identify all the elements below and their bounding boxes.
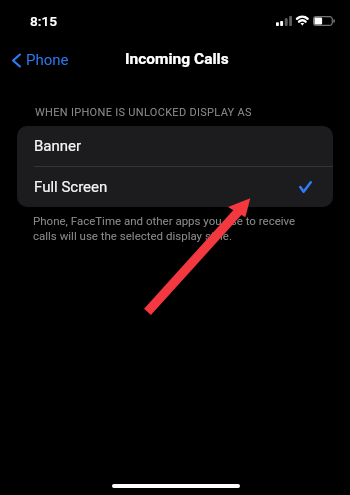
staticText: Phone (26, 51, 69, 69)
staticText: WHEN IPHONE IS UNLOCKED DISPLAY AS (35, 106, 252, 119)
button[interactable]: Back to Phone (6, 46, 75, 74)
button[interactable]: Full Screen (17, 167, 333, 207)
staticText: Incoming Calls (125, 50, 229, 68)
other: Selected (299, 181, 312, 193)
other: Wi-Fi (294, 14, 310, 27)
staticText: Full Screen (34, 178, 108, 196)
staticText: 8:15 (30, 13, 57, 29)
other: Cellular signal (276, 16, 292, 26)
other: Battery (313, 16, 335, 26)
staticText: Phone, FaceTime and other apps you use t… (33, 214, 305, 243)
staticText: Banner (34, 137, 82, 155)
button[interactable]: Banner (17, 126, 333, 166)
